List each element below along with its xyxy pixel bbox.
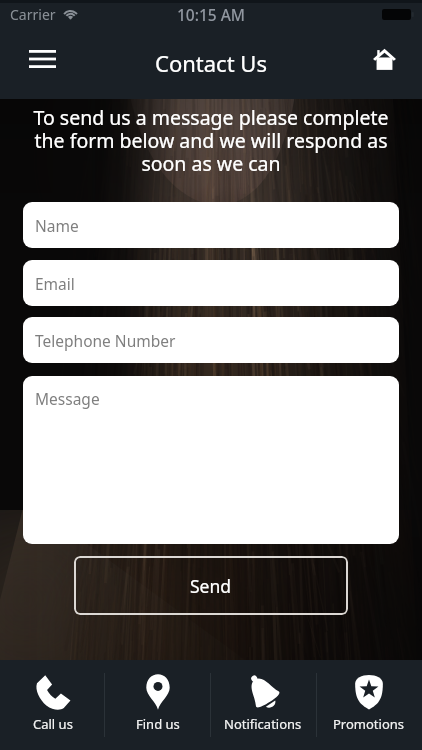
staticText: Email [35, 273, 75, 294]
button[interactable]: Message [23, 376, 399, 544]
button[interactable]: Send [74, 556, 348, 615]
staticText: To send us a message please complete the… [17, 104, 405, 177]
staticText: Notifications [224, 715, 302, 733]
staticText: 10:15 AM [177, 4, 246, 25]
staticText: Call us [33, 715, 73, 733]
staticText: Telephone Number [35, 330, 176, 351]
button[interactable]: Telephone Number [23, 317, 399, 363]
staticText: Carrier [10, 5, 56, 24]
staticText: Message [35, 388, 100, 409]
button[interactable]: Home [362, 37, 406, 81]
button[interactable]: Email [23, 260, 399, 306]
staticText: Send [190, 574, 232, 598]
button[interactable]: Call us [0, 660, 105, 750]
button[interactable]: Promotions [316, 660, 422, 750]
button[interactable]: Notifications [210, 660, 316, 750]
staticText: Find us [136, 715, 180, 733]
button[interactable]: Menu [18, 35, 66, 83]
staticText: Name [35, 215, 79, 236]
button[interactable]: Find us [105, 660, 210, 750]
staticText: Promotions [333, 715, 405, 733]
button[interactable]: Name [23, 202, 399, 248]
staticText: Contact Us [155, 48, 267, 78]
